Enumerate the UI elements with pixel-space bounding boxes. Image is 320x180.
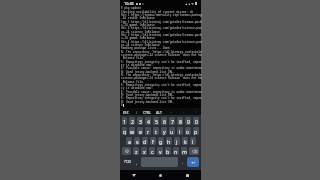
staticText: N: The repository 'https://dl.bintray.co… [121, 73, 202, 77]
staticText: m [182, 148, 187, 155]
staticText: Release file. [121, 80, 145, 84]
button[interactable]: d [142, 137, 148, 145]
button[interactable]: c [149, 147, 155, 155]
button[interactable]: 2 [129, 117, 135, 125]
staticText: E: Possible cause: repository is under m… [121, 66, 202, 70]
staticText: 2 [131, 118, 134, 125]
button[interactable]: 7 [169, 117, 175, 125]
staticText: r [147, 128, 150, 135]
button[interactable]: s [134, 137, 140, 145]
button[interactable]: 5 [153, 117, 159, 125]
staticText: k [184, 138, 187, 145]
staticText: e [139, 128, 142, 135]
button[interactable]: 1 [122, 117, 127, 125]
staticText: science-packages-24 science Release' doe… [121, 53, 202, 57]
button[interactable]: r [145, 127, 151, 135]
button[interactable]: ↓ [177, 108, 189, 115]
button[interactable]: Recents [174, 170, 201, 180]
button[interactable]: q [122, 127, 127, 135]
button[interactable]: 3 [137, 117, 143, 125]
staticText: 10:45 [124, 1, 134, 6]
button[interactable]: Enter [187, 157, 199, 167]
button[interactable]: ESC [120, 108, 131, 115]
staticText: d [143, 138, 147, 145]
staticText: h [167, 138, 171, 145]
button[interactable]: 4 [145, 117, 151, 125]
staticText: CTRL [143, 110, 152, 114]
button[interactable]: , [134, 157, 139, 167]
staticText: / [136, 110, 138, 114]
staticText: E: Repository integrity can't be verifie… [121, 83, 202, 87]
button[interactable]: 9 [185, 117, 191, 125]
staticText: o [186, 128, 190, 135]
staticText: f [152, 138, 154, 145]
button[interactable]: v [157, 147, 163, 155]
button[interactable]: p [193, 127, 199, 135]
staticText: es-24 science InRelease [121, 30, 160, 34]
staticText: g [159, 138, 163, 145]
staticText: − [170, 110, 172, 114]
button[interactable]: w [129, 127, 135, 135]
button[interactable]: − [165, 108, 177, 115]
button[interactable]: m [181, 147, 187, 155]
staticText: N: Used jessey-backend.list URL. [121, 93, 175, 97]
button[interactable]: Backspace [189, 147, 199, 155]
staticText: j [176, 138, 178, 145]
button[interactable]: o [185, 127, 191, 135]
button[interactable]: ALT [153, 108, 165, 115]
staticText: ESC [123, 110, 129, 114]
staticText: q [123, 128, 127, 135]
staticText: i [179, 128, 181, 135]
button[interactable]: y [161, 127, 167, 135]
button[interactable]: 6 [161, 117, 167, 125]
staticText: y [163, 128, 166, 135]
staticText: ry is disabled now. [121, 86, 153, 90]
button[interactable]: t [153, 127, 159, 135]
staticText: E: Repository integrity can't be verifie… [121, 60, 202, 64]
staticText: Hit:4 https://dl.bintray.com/grimler/sci… [121, 40, 202, 44]
staticText: b [166, 148, 170, 155]
staticText: Hit:2 https://dl.bintray.com/grimler/sci… [121, 26, 202, 30]
button[interactable]: 8 [177, 117, 183, 125]
staticText: N: Used jessey-backend.list URL. [121, 70, 175, 74]
button[interactable]: l [190, 137, 196, 145]
staticText: Release file. [121, 56, 145, 60]
button[interactable]: x [141, 147, 147, 155]
button[interactable]: ?123 [122, 157, 132, 167]
staticText: Hit:1 https://termux.mentality.rip/termu… [121, 13, 202, 17]
button[interactable]: Back [120, 170, 147, 180]
button[interactable]: i [177, 127, 183, 135]
staticText: a [128, 138, 131, 145]
button[interactable]: h [166, 137, 172, 145]
button[interactable]: a [126, 137, 132, 145]
staticText: ↓ [182, 110, 185, 114]
button[interactable]: Home [147, 170, 174, 180]
staticText: N: The repository 'https://dl.bintray.co… [121, 50, 202, 54]
button[interactable]: 0 [193, 117, 199, 125]
button[interactable]: . [180, 157, 185, 167]
button[interactable]: u [169, 127, 175, 135]
button[interactable]: k [182, 137, 188, 145]
button[interactable]: j [174, 137, 180, 145]
button[interactable]: g [158, 137, 164, 145]
button[interactable]: Shift [122, 147, 131, 155]
staticText: Checking availability of current mirror:… [121, 10, 194, 14]
button[interactable]: b [165, 147, 171, 155]
button[interactable]: CTRL [142, 108, 153, 115]
button[interactable]: / [131, 108, 142, 115]
staticText: -24 stable InRelease [121, 16, 155, 20]
staticText: v [159, 148, 162, 155]
button[interactable]: f [150, 137, 156, 145]
staticText: es-24 science InRelease [121, 43, 160, 47]
button[interactable]: e [137, 127, 143, 135]
staticText: s-24 games InRelease [121, 36, 155, 40]
staticText: u [170, 128, 174, 135]
staticText: 9 [187, 118, 190, 125]
staticText: Ign:1 https://dl.bintray.com/grimler/ter… [121, 20, 202, 24]
staticText: ↑ [194, 110, 197, 114]
staticText: s [136, 138, 139, 145]
button[interactable]: z [133, 147, 139, 155]
button[interactable]: n [173, 147, 179, 155]
